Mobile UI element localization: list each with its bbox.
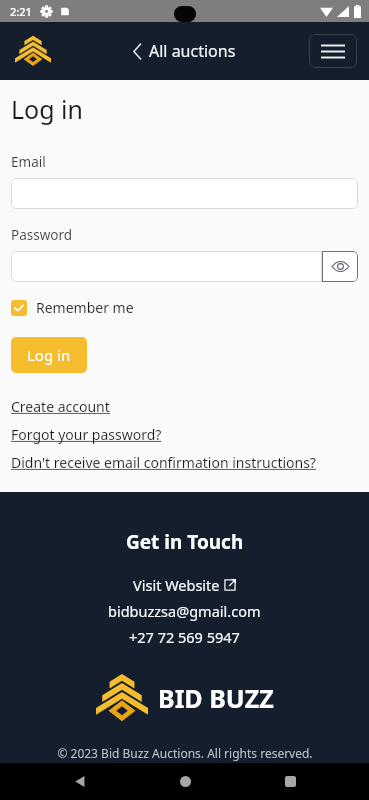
staticText: Visit Website xyxy=(133,575,220,595)
staticText: Create account xyxy=(11,397,110,416)
staticText: +27 72 569 5947 xyxy=(129,627,240,647)
staticText: Password xyxy=(11,226,73,244)
button[interactable]: Menu xyxy=(309,34,357,68)
staticText: Get in Touch xyxy=(126,529,244,555)
button[interactable]: Back xyxy=(52,763,106,800)
staticText: BID BUZZ xyxy=(158,681,274,715)
staticText: Email xyxy=(11,153,46,171)
button[interactable]: All auctions xyxy=(133,40,236,62)
staticText: Log in xyxy=(11,92,84,126)
button[interactable]: Show password xyxy=(322,251,358,282)
staticText: bidbuzzsa@gmail.com xyxy=(108,601,261,621)
button[interactable]: Bid Buzz home xyxy=(12,30,54,72)
button[interactable]: Create account xyxy=(11,397,110,416)
staticText: Remember me xyxy=(36,298,134,317)
button[interactable]: Remember me xyxy=(11,298,134,317)
button[interactable]: Visit Website xyxy=(133,575,236,595)
button[interactable]: Home xyxy=(158,763,212,800)
button[interactable]: Didn't receive email confirmation instru… xyxy=(11,453,316,472)
button[interactable]: Password field xyxy=(11,251,322,282)
staticText: Didn't receive email confirmation instru… xyxy=(11,453,316,472)
staticText: All auctions xyxy=(149,40,236,62)
button[interactable]: Log in xyxy=(11,337,87,373)
staticText: Forgot your password? xyxy=(11,425,162,444)
staticText: © 2023 Bid Buzz Auctions. All rights res… xyxy=(57,745,313,761)
staticText: Log in xyxy=(27,345,71,365)
button[interactable]: BID BUZZ xyxy=(96,673,274,723)
button[interactable]: Forgot your password? xyxy=(11,425,162,444)
staticText: 2:21 xyxy=(10,4,32,19)
button[interactable]: Recent apps xyxy=(263,763,317,800)
button[interactable]: Email field xyxy=(11,178,358,209)
